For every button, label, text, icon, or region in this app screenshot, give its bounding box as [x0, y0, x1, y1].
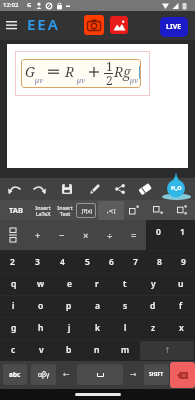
button[interactable]: − [50, 220, 74, 250]
button[interactable]: f [167, 295, 195, 317]
staticText: H₂O [171, 184, 182, 191]
staticText: f [179, 300, 183, 312]
staticText: s [123, 300, 128, 312]
button[interactable] [4, 179, 24, 199]
button[interactable]: ,≺( [98, 201, 124, 220]
button[interactable]: d [139, 295, 167, 317]
button[interactable]: a [83, 295, 111, 317]
button[interactable]: H₂O [160, 172, 192, 194]
button[interactable]: h [27, 317, 55, 339]
button[interactable]: ↑ [140, 341, 194, 360]
button[interactable]: 9 [171, 250, 195, 273]
button[interactable]: z [139, 317, 167, 339]
staticText: LIVE [166, 22, 182, 32]
button[interactable] [85, 179, 105, 199]
button[interactable]: 7 [123, 250, 147, 273]
staticText: μν [35, 76, 43, 86]
button[interactable]: 6 [99, 250, 123, 273]
staticText: u [178, 278, 184, 290]
button[interactable] [124, 200, 144, 220]
button[interactable]: 8 [147, 250, 171, 273]
button[interactable]: = [122, 220, 146, 250]
staticText: v [39, 344, 44, 356]
button[interactable] [29, 179, 49, 199]
button[interactable] [172, 200, 192, 220]
staticText: r [95, 278, 99, 290]
button[interactable]: 2 [0, 250, 25, 273]
button[interactable]: ∫f(x) [76, 203, 96, 218]
button[interactable]: e [55, 273, 83, 295]
button[interactable]: 5 [75, 250, 99, 273]
button[interactable]: 0 [146, 220, 170, 244]
staticText: e [67, 278, 72, 290]
staticText: 2 [106, 72, 113, 88]
button[interactable]: v [27, 339, 55, 361]
staticText: j [68, 322, 71, 334]
button[interactable] [148, 200, 168, 220]
staticText: i [12, 300, 15, 312]
button[interactable]: αβγ [31, 364, 56, 385]
button[interactable]: SHIFT [144, 364, 169, 385]
staticText: R [114, 62, 124, 81]
button[interactable]: g [0, 317, 27, 339]
button[interactable] [2, 16, 20, 34]
staticText: ← [63, 370, 70, 379]
button[interactable]: i [0, 295, 27, 317]
button[interactable]: Insert Text [55, 201, 75, 219]
button[interactable]: 1 [170, 220, 195, 244]
button[interactable] [57, 179, 77, 199]
button[interactable] [77, 364, 123, 385]
button[interactable] [110, 16, 128, 34]
button[interactable]: y [139, 273, 167, 295]
staticText: 12:02 [3, 1, 19, 9]
button[interactable]: u [167, 273, 195, 295]
staticText: p [66, 300, 72, 312]
staticText: a [95, 300, 100, 312]
button[interactable] [110, 179, 130, 199]
button[interactable]: k [83, 317, 111, 339]
button[interactable]: s [111, 295, 139, 317]
button[interactable] [170, 362, 195, 388]
button[interactable]: w [27, 273, 55, 295]
button[interactable]: l [111, 317, 139, 339]
staticText: × [83, 229, 89, 242]
button[interactable]: j [55, 317, 83, 339]
button[interactable]: t [111, 273, 139, 295]
staticText: − [59, 229, 65, 242]
button[interactable]: r [83, 273, 111, 295]
staticText: 9 [181, 256, 186, 268]
button[interactable]: o [27, 295, 55, 317]
button[interactable]: m [111, 339, 139, 361]
button[interactable]: p [55, 295, 83, 317]
button[interactable]: c [0, 339, 27, 361]
staticText: G [25, 62, 35, 81]
staticText: g [11, 322, 17, 334]
button[interactable] [0, 220, 25, 250]
staticText: ÷ [107, 229, 113, 242]
staticText: αβγ [38, 370, 50, 379]
button[interactable]: + [25, 220, 50, 250]
button[interactable]: 3 [25, 250, 50, 273]
button[interactable]: 4 [50, 250, 75, 273]
button[interactable]: abc [3, 364, 27, 385]
staticText: TAB [9, 205, 23, 215]
button[interactable]: × [74, 220, 98, 250]
staticText: ,≺( [107, 207, 116, 215]
button[interactable]: n [83, 339, 111, 361]
button[interactable] [135, 179, 155, 199]
staticText: x [179, 322, 184, 334]
button[interactable]: LIVE [160, 17, 188, 37]
button[interactable]: x [167, 317, 195, 339]
staticText: ∫f(x) [81, 207, 92, 214]
button[interactable]: q [0, 273, 27, 295]
button[interactable] [84, 15, 104, 35]
staticText: t [123, 278, 127, 290]
staticText: o [38, 300, 44, 312]
staticText: EEA [27, 14, 60, 34]
button[interactable]: b [55, 339, 83, 361]
staticText: d [150, 300, 156, 312]
button[interactable]: Insert LaTeX [32, 201, 54, 219]
button[interactable]: ÷ [98, 220, 122, 250]
staticText: μν [77, 76, 85, 86]
staticText: h [38, 322, 44, 334]
